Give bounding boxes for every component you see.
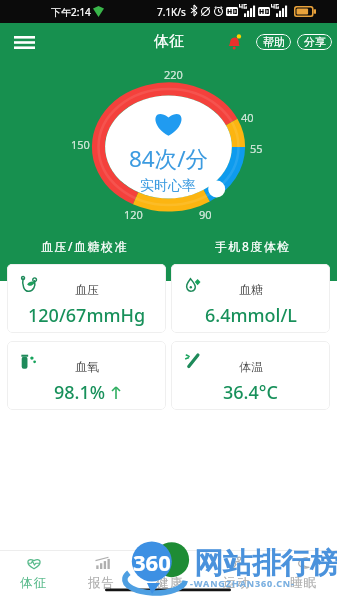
staticText: 36.4°C: [223, 380, 278, 405]
staticText: 分享: [304, 35, 326, 49]
staticText: 实时心率: [140, 177, 196, 195]
staticText: 6.4mmol/L: [205, 303, 297, 328]
button[interactable]: 分享: [297, 34, 332, 50]
staticText: 84次/分: [129, 143, 209, 174]
staticText: 90: [199, 207, 212, 222]
staticText: -WANGZHAN360.CN-: [190, 577, 295, 589]
button[interactable]: 血氧: [7, 341, 166, 410]
staticText: 120: [124, 207, 143, 222]
button[interactable]: 血糖: [171, 264, 330, 333]
staticText: 体温: [239, 359, 263, 374]
button[interactable]: 血压: [7, 264, 166, 333]
button[interactable]: 健康: [136, 551, 203, 600]
staticText: 150: [71, 137, 90, 152]
button[interactable]: 手机8度体检: [168, 228, 337, 264]
button[interactable]: 睡眠: [270, 551, 337, 600]
staticText: 7.1K/s: [157, 5, 186, 19]
staticText: 体征: [20, 575, 48, 591]
button[interactable]: Notifications: [224, 32, 244, 52]
staticText: 120/67mmHg: [28, 303, 146, 328]
button[interactable]: 体温: [171, 341, 330, 410]
button[interactable]: 血压/血糖校准: [0, 228, 168, 264]
staticText: 睡眠: [290, 575, 318, 591]
staticText: 98.1%: [54, 380, 106, 405]
staticText: 360: [133, 547, 171, 577]
staticText: 40: [241, 110, 254, 125]
staticText: 网站排行榜: [194, 545, 337, 582]
button[interactable]: 运动: [203, 551, 270, 600]
staticText: 帮助: [263, 35, 285, 49]
staticText: 血压: [75, 282, 99, 297]
staticText: 血糖: [239, 282, 263, 297]
button[interactable]: 报告: [68, 551, 136, 600]
staticText: 血氧: [75, 359, 99, 374]
button[interactable]: Menu: [8, 27, 41, 57]
staticText: 血压/血糖校准: [41, 238, 128, 254]
staticText: 健康: [156, 575, 184, 591]
staticText: 体征: [154, 32, 184, 51]
staticText: 手机8度体检: [215, 238, 291, 254]
button[interactable]: 体征: [0, 551, 68, 600]
staticText: 下午2:14: [51, 5, 91, 19]
button[interactable]: 帮助: [256, 34, 291, 50]
staticText: 报告: [88, 575, 116, 591]
staticText: 55: [250, 141, 263, 156]
staticText: 220: [164, 67, 183, 82]
staticText: 运动: [223, 575, 251, 591]
